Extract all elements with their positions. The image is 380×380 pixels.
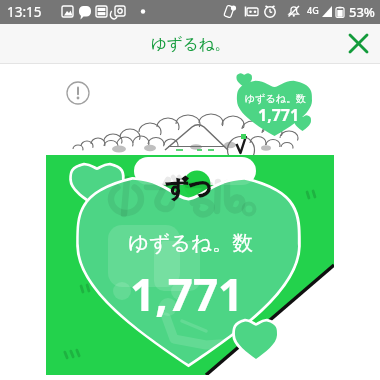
staticText: 53% [349, 3, 375, 21]
button[interactable]: Close [336, 24, 380, 63]
staticText: 1,771 [130, 264, 244, 324]
staticText: 4G [307, 4, 319, 16]
staticText: ゆずるね。数 [128, 230, 253, 256]
staticText: 1,771 [258, 104, 300, 126]
staticText: ゆずるね。数 [245, 92, 306, 105]
staticText: 13:15 [7, 3, 42, 21]
staticText: ゆずるね。 [151, 34, 230, 54]
staticText: ずつ [165, 174, 213, 203]
